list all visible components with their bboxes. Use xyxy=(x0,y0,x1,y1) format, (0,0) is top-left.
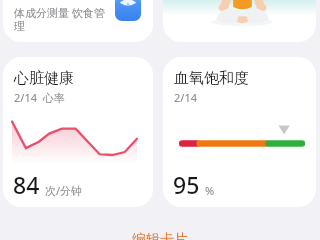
button[interactable]: 血氧饱和度 xyxy=(163,57,316,207)
button[interactable]: 健康管理 xyxy=(3,0,153,42)
button[interactable]: 编辑卡片 xyxy=(132,231,188,240)
staticText: 心脏健康 xyxy=(14,69,74,88)
staticText: 2/14 xyxy=(174,90,197,105)
other: Body composition xyxy=(115,0,141,21)
button[interactable] xyxy=(163,0,316,42)
staticText: 2/14 心率 xyxy=(14,90,65,105)
staticText: 84 xyxy=(13,169,40,200)
staticText: 次/分钟 xyxy=(45,183,83,198)
staticText: % xyxy=(205,183,215,198)
button[interactable]: 心脏健康 xyxy=(3,57,153,207)
staticText: 95 xyxy=(173,169,200,200)
staticText: 体成分测量 饮食管理 xyxy=(14,5,114,33)
staticText: 血氧饱和度 xyxy=(174,69,249,88)
